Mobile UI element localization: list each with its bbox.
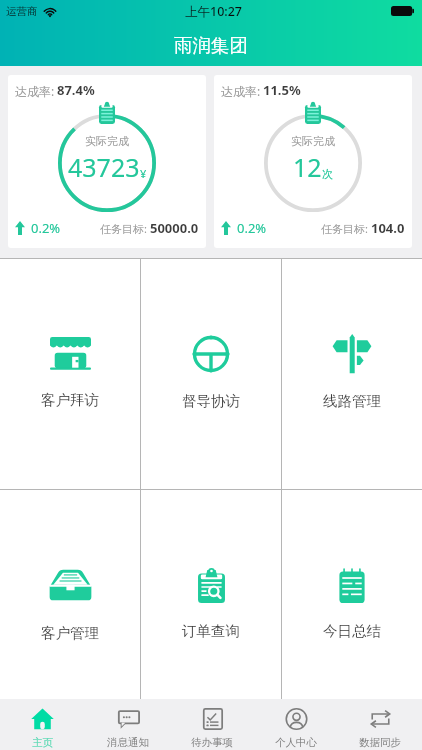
button[interactable]: 个人中心	[254, 699, 338, 750]
staticText: 0.2%	[31, 219, 61, 237]
button[interactable]: 达成率:	[214, 75, 412, 248]
button[interactable]: 数据同步	[338, 699, 422, 750]
staticText: 线路管理	[323, 392, 381, 410]
staticText: 0.2%	[237, 219, 267, 237]
staticText: 43723	[68, 150, 140, 184]
staticText: 数据同步	[359, 736, 401, 749]
staticText: 督导协访	[182, 392, 240, 410]
staticText: 今日总结	[323, 622, 381, 640]
button[interactable]: 消息通知	[85, 699, 170, 750]
staticText: 12	[293, 150, 322, 184]
staticText: 87.4%	[57, 81, 95, 99]
staticText: 达成率:	[15, 83, 55, 99]
button[interactable]: 达成率:	[8, 75, 206, 248]
staticText: 104.0	[371, 219, 405, 237]
staticText: 11.5%	[263, 81, 301, 99]
button[interactable]: 督导协访	[141, 259, 281, 489]
staticText: 上午10:27	[185, 3, 243, 20]
staticText: 订单查询	[182, 622, 240, 640]
staticText: 50000.0	[150, 219, 199, 237]
staticText: 待办事项	[191, 736, 233, 749]
button[interactable]: 客户拜访	[0, 259, 140, 489]
staticText: ¥	[140, 166, 147, 181]
button[interactable]: 线路管理	[282, 259, 422, 489]
staticText: 实际完成	[291, 134, 335, 148]
staticText: 消息通知	[107, 736, 149, 749]
staticText: 任务目标:	[321, 221, 368, 236]
button[interactable]: 客户管理	[0, 490, 140, 699]
button[interactable]: 主页	[0, 699, 85, 750]
staticText: 主页	[32, 736, 53, 749]
button[interactable]: 今日总结	[282, 490, 422, 699]
staticText: 客户拜访	[41, 391, 99, 409]
staticText: 运营商	[6, 5, 38, 18]
staticText: 个人中心	[275, 736, 317, 749]
staticText: 实际完成	[85, 134, 129, 148]
staticText: 雨润集团	[174, 34, 248, 57]
staticText: 客户管理	[41, 624, 99, 642]
button[interactable]: 待办事项	[170, 699, 254, 750]
staticText: 达成率:	[221, 83, 261, 99]
staticText: 次	[322, 167, 333, 181]
button[interactable]: 订单查询	[141, 490, 281, 699]
staticText: 任务目标:	[100, 221, 147, 236]
